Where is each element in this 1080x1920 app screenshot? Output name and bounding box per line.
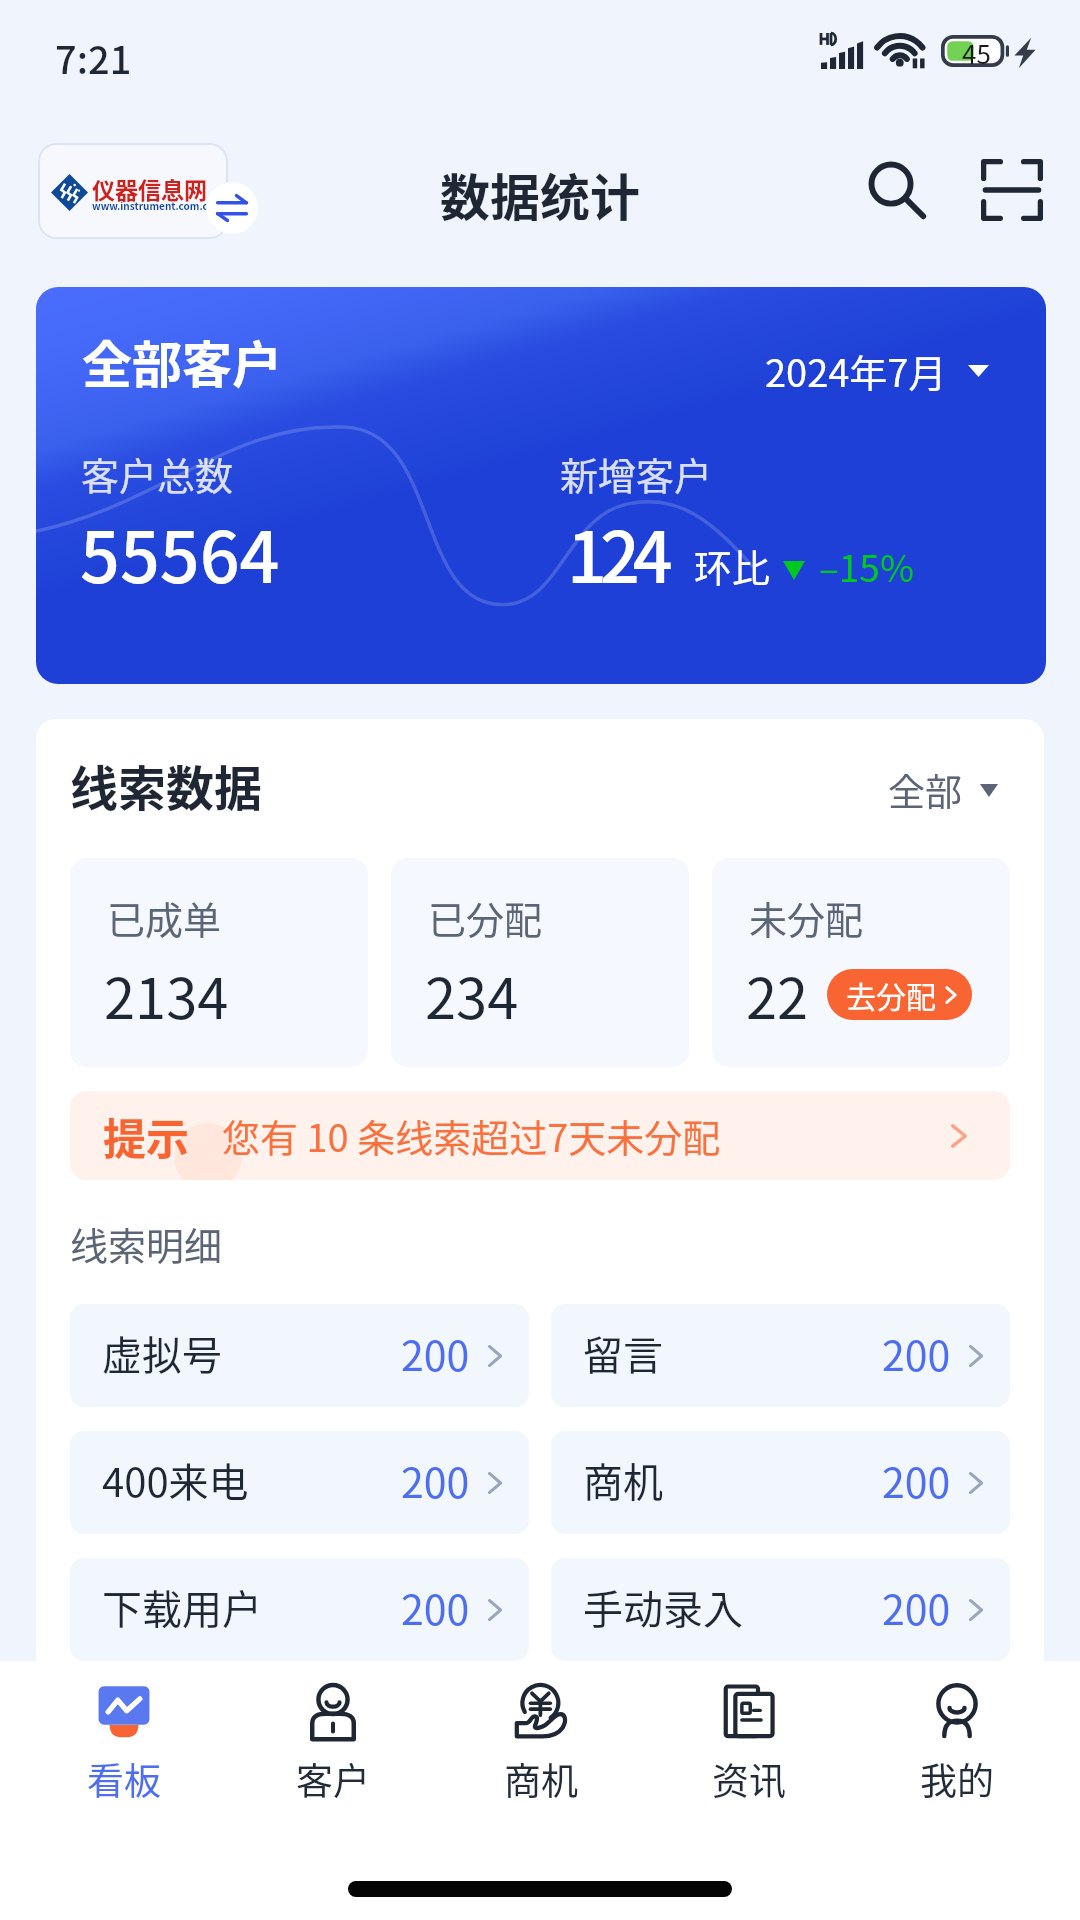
staticText: 数据统计 bbox=[440, 158, 640, 230]
staticText: 未分配 bbox=[749, 890, 864, 945]
button[interactable]: 提示 bbox=[70, 1091, 1010, 1180]
staticText: 45 bbox=[962, 34, 991, 66]
staticText: 200 bbox=[401, 1323, 470, 1382]
staticText: 环比 bbox=[694, 538, 771, 593]
staticText: 7:21 bbox=[55, 30, 132, 85]
staticText: 虚拟号 bbox=[102, 1324, 222, 1382]
button[interactable]: 我的 bbox=[853, 1661, 1061, 1811]
staticText: 下载用户 bbox=[102, 1578, 262, 1636]
button[interactable]: 手动录入 bbox=[551, 1558, 1010, 1661]
button[interactable]: 切换企业 bbox=[38, 143, 228, 239]
button[interactable]: 切换 bbox=[206, 182, 258, 234]
staticText: 已分配 bbox=[428, 890, 543, 945]
button[interactable]: 去分配 bbox=[827, 969, 972, 1020]
button[interactable]: 扫一扫 bbox=[969, 147, 1055, 233]
staticText: 留言 bbox=[583, 1324, 663, 1382]
staticText: www.instrument.com.cn bbox=[92, 198, 215, 212]
staticText: 124 bbox=[567, 502, 666, 603]
button[interactable]: 已分配 bbox=[391, 858, 689, 1067]
staticText: 22 bbox=[746, 954, 809, 1035]
button[interactable]: 资讯 bbox=[645, 1661, 853, 1811]
button[interactable]: 下载用户 bbox=[70, 1558, 529, 1661]
staticText: 2024年7月 bbox=[765, 343, 947, 398]
staticText: 400来电 bbox=[102, 1451, 249, 1509]
staticText: 全部客户 bbox=[82, 325, 282, 397]
staticText: 200 bbox=[401, 1450, 470, 1509]
button[interactable]: 虚拟号 bbox=[70, 1304, 529, 1407]
staticText: 55564 bbox=[80, 502, 280, 603]
staticText: 200 bbox=[401, 1577, 470, 1636]
staticText: 去分配 bbox=[846, 973, 936, 1016]
staticText: –15% bbox=[819, 539, 914, 593]
button[interactable]: 全部客户 bbox=[36, 287, 1046, 684]
staticText: 商机 bbox=[504, 1752, 578, 1806]
staticText: 客户总数 bbox=[81, 446, 234, 501]
button[interactable]: 未分配 bbox=[712, 858, 1010, 1067]
staticText: 客户 bbox=[296, 1752, 370, 1806]
staticText: 线索数据 bbox=[70, 750, 263, 820]
staticText: 仪器信息网 bbox=[92, 172, 207, 205]
staticText: 已成单 bbox=[107, 890, 222, 945]
button[interactable]: 看板 bbox=[19, 1661, 228, 1811]
staticText: 200 bbox=[882, 1323, 951, 1382]
button[interactable]: 商机 bbox=[437, 1661, 645, 1811]
staticText: 200 bbox=[882, 1577, 951, 1636]
button[interactable]: 留言 bbox=[551, 1304, 1010, 1407]
staticText: 新增客户 bbox=[560, 446, 713, 501]
button[interactable]: 400来电 bbox=[70, 1431, 529, 1534]
staticText: 全部 bbox=[888, 763, 962, 817]
button[interactable]: 商机 bbox=[551, 1431, 1010, 1534]
staticText: 我的 bbox=[920, 1752, 994, 1806]
staticText: 2134 bbox=[104, 954, 229, 1035]
button[interactable]: 客户 bbox=[228, 1661, 437, 1811]
button[interactable]: 全部 bbox=[884, 759, 1002, 821]
button[interactable]: 2024年7月 bbox=[759, 337, 995, 404]
staticText: 提示 bbox=[103, 1105, 189, 1167]
staticText: 您有 10 条线索超过7天未分配 bbox=[222, 1108, 721, 1163]
staticText: 手动录入 bbox=[583, 1578, 743, 1636]
staticText: 资讯 bbox=[712, 1752, 786, 1806]
button[interactable]: 搜索 bbox=[853, 146, 939, 232]
staticText: 商机 bbox=[583, 1451, 663, 1509]
staticText: 看板 bbox=[87, 1752, 161, 1806]
button[interactable]: 已成单 bbox=[70, 858, 368, 1067]
staticText: 线索明细 bbox=[70, 1216, 223, 1271]
staticText: 200 bbox=[882, 1450, 951, 1509]
staticText: 234 bbox=[425, 954, 519, 1035]
